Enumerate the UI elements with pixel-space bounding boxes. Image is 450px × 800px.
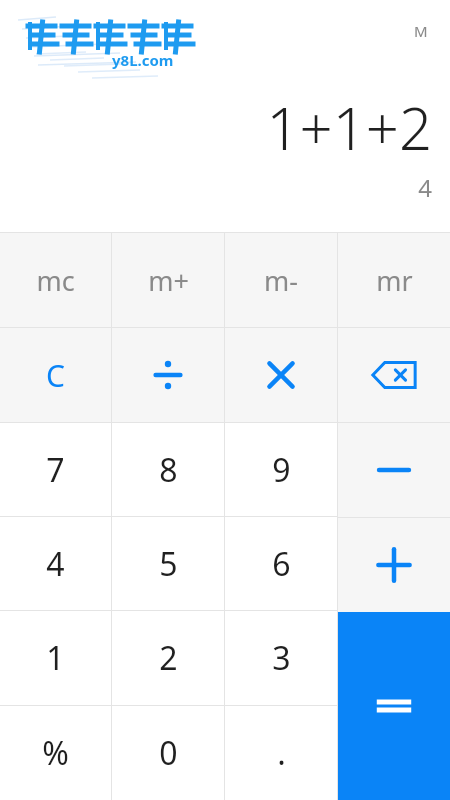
button[interactable]: 6 [225,517,337,610]
staticText: 1+1+2 [266,88,432,167]
staticText: 3 [272,636,291,680]
button[interactable]: . [225,706,337,800]
staticText: mr [376,262,413,299]
button[interactable]: mc [0,233,111,327]
staticText: 4 [418,171,432,204]
button[interactable]: 1 [0,611,111,705]
staticText: 9 [272,448,291,492]
staticText: 6 [272,542,291,586]
button[interactable]: m+ [112,233,224,327]
button[interactable]: 7 [0,423,111,516]
button[interactable]: Multiply [225,328,337,422]
button[interactable]: 5 [112,517,224,610]
staticText: % [42,731,69,775]
button[interactable]: 2 [112,611,224,705]
button[interactable]: mr [338,233,450,327]
staticText: 2 [159,636,178,680]
button[interactable]: Equals [338,612,450,800]
staticText: mc [36,262,75,299]
button[interactable]: 9 [225,423,337,516]
button[interactable]: Divide [112,328,224,422]
button[interactable]: 0 [112,706,224,800]
staticText: m- [264,262,298,299]
staticText: y8L.com [112,50,174,70]
staticText: 8 [159,448,178,492]
staticText: M [414,21,428,41]
button[interactable]: Backspace [338,328,450,422]
staticText: 4 [46,542,65,586]
staticText: m+ [148,262,189,299]
staticText: 5 [159,542,178,586]
button[interactable]: C [0,328,111,422]
button[interactable]: 4 [0,517,111,610]
button[interactable]: Minus [338,423,450,517]
staticText: . [277,731,286,775]
button[interactable]: m- [225,233,337,327]
staticText: 0 [159,731,178,775]
staticText: 1 [46,636,65,680]
button[interactable]: % [0,706,111,800]
button[interactable]: 8 [112,423,224,516]
staticText: 7 [46,448,65,492]
button[interactable]: Plus [338,518,450,612]
button[interactable]: 3 [225,611,337,705]
staticText: C [46,355,65,396]
